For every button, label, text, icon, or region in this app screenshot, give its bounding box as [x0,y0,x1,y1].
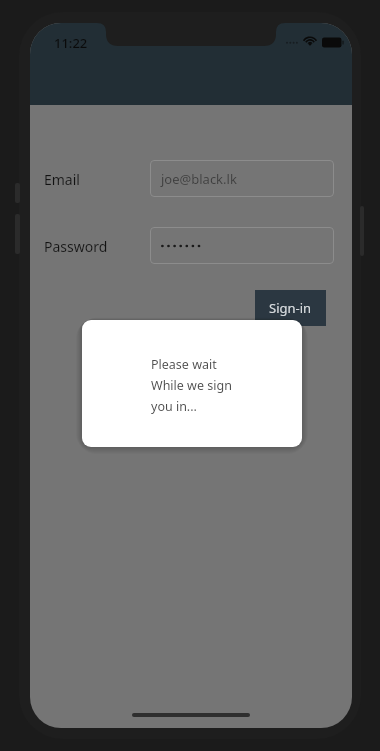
staticText: Please wait [151,356,217,373]
staticText: Email [44,170,80,189]
staticText: joe@black.lk [161,170,237,188]
button[interactable]: Sign-in [255,290,326,326]
button[interactable] [150,227,334,264]
other: Home [132,713,250,717]
staticText: 11:22 [54,34,88,52]
staticText: Password [44,237,108,256]
staticText: you in... [151,398,197,415]
staticText: While we sign [151,377,232,394]
button[interactable]: joe@black.lk [150,160,334,197]
staticText: Sign-in [269,299,312,317]
